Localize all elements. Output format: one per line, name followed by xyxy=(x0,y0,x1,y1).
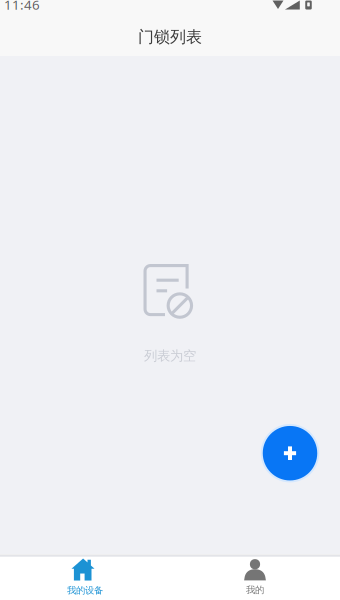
button[interactable]: 我的设备 xyxy=(0,557,170,600)
staticText: 我的设备 xyxy=(67,585,103,596)
staticText: 门锁列表 xyxy=(138,27,202,47)
staticText: 列表为空 xyxy=(144,347,196,364)
staticText: 11:46 xyxy=(4,0,40,13)
button[interactable]: 添加设备 xyxy=(259,422,321,484)
staticText: 我的 xyxy=(246,584,264,596)
button[interactable]: 我的 xyxy=(170,557,340,600)
